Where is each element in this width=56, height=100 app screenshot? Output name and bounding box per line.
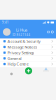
button[interactable]: Privacy Settings bbox=[0, 50, 56, 56]
staticText: Privacy Settings bbox=[7, 50, 34, 55]
button[interactable]: Account & Security bbox=[0, 39, 56, 44]
staticText: Li Hua bbox=[16, 27, 27, 33]
staticText: Message Notices bbox=[7, 44, 37, 50]
staticText: General bbox=[7, 56, 21, 61]
staticText: Account & Security bbox=[7, 39, 40, 44]
staticText: ID 8627344 bbox=[13, 33, 31, 37]
button[interactable]: More bbox=[0, 67, 15, 75]
button[interactable]: Li Hua bbox=[0, 27, 31, 37]
staticText: 9:41 bbox=[2, 21, 9, 24]
button[interactable]: Compose bbox=[25, 67, 32, 75]
button[interactable]: Settings bbox=[47, 31, 56, 33]
staticText: Help Centre bbox=[7, 61, 28, 67]
button[interactable]: Message Notices bbox=[0, 44, 56, 50]
button[interactable]: General bbox=[0, 56, 56, 62]
button[interactable]: Help Centre bbox=[0, 61, 56, 67]
